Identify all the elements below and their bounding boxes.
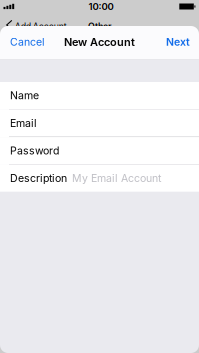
staticText: New Account: [64, 35, 135, 49]
button[interactable]: Password: [0, 137, 199, 165]
staticText: Next: [166, 36, 190, 48]
staticText: Add Account: [15, 21, 67, 32]
button[interactable]: Next: [158, 28, 199, 56]
staticText: Email: [10, 117, 37, 129]
staticText: 10:00: [88, 1, 113, 12]
button[interactable]: Name: [0, 82, 199, 110]
staticText: Cancel: [10, 36, 45, 48]
staticText: Name: [10, 89, 39, 102]
button[interactable]: Cancel: [0, 28, 53, 56]
staticText: Other: [88, 21, 111, 32]
button[interactable]: Email: [0, 109, 199, 137]
staticText: Description: [10, 172, 67, 184]
staticText: Password: [10, 144, 59, 157]
button[interactable]: Description: [0, 165, 199, 192]
staticText: My Email Account: [72, 172, 161, 184]
